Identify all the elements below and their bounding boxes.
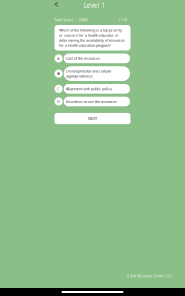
button[interactable]: NEXT: [54, 113, 130, 124]
staticText: NEXT: [88, 116, 97, 121]
button[interactable]: Back: [50, 0, 62, 10]
staticText: 1 / 10: [118, 17, 127, 22]
staticText: 100%: [78, 17, 87, 22]
staticText: Alignment with public policy: [66, 86, 112, 91]
button[interactable]: A: [54, 53, 130, 63]
staticText: G.R.A. Resource Center, LLC: [126, 274, 171, 278]
staticText: Level 1: [83, 1, 105, 10]
button[interactable]: D: [54, 97, 130, 106]
staticText: Incentives to use the resources: [66, 99, 117, 104]
staticText: A: [57, 56, 60, 61]
staticText: D: [57, 99, 60, 104]
staticText: Cost of the resources: [66, 56, 100, 61]
staticText: Developmental and cultural appropriatene…: [66, 68, 111, 79]
staticText: Which of the following is a top priority…: [59, 28, 125, 48]
staticText: C: [57, 86, 60, 91]
staticText: Total Score :: [54, 17, 75, 22]
button[interactable]: Developmental and cultural appropriatene…: [54, 66, 130, 81]
button[interactable]: C: [54, 84, 130, 94]
